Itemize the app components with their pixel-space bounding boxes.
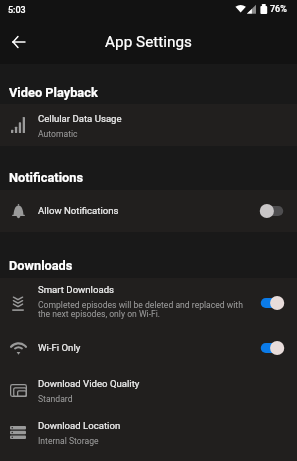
staticText: Internal Storage (38, 436, 99, 446)
staticText: Cellular Data Usage (38, 113, 122, 124)
staticText: Wi-Fi Only (38, 342, 81, 353)
button[interactable]: Download Location (0, 411, 297, 453)
staticText: Automatic (38, 129, 78, 139)
button[interactable]: Download Video Quality (0, 369, 297, 411)
staticText: Download Location (38, 420, 121, 431)
staticText: Download Video Quality (38, 378, 140, 389)
button[interactable]: Smart Downloads (0, 278, 297, 327)
staticText: Standard (38, 394, 73, 404)
staticText: Video Playback (9, 85, 98, 100)
button[interactable]: Wi-Fi Only (0, 327, 297, 369)
button[interactable]: Toggle on (260, 294, 284, 312)
button[interactable]: Toggle off (260, 202, 284, 220)
staticText: Smart Downloads (38, 284, 114, 295)
staticText: Allow Notifications (38, 205, 119, 216)
button[interactable]: Allow Notifications (0, 190, 297, 232)
staticText: Notifications (9, 170, 84, 185)
staticText: App Settings (105, 33, 192, 51)
staticText: Completed episodes will be deleted and r… (38, 300, 243, 319)
button[interactable]: Toggle on (260, 339, 284, 357)
staticText: Downloads (9, 258, 73, 273)
staticText: 76% (270, 4, 287, 15)
button[interactable]: Cellular Data Usage (0, 104, 297, 146)
staticText: 5:03 (8, 5, 26, 16)
button[interactable]: Back (3, 27, 33, 57)
